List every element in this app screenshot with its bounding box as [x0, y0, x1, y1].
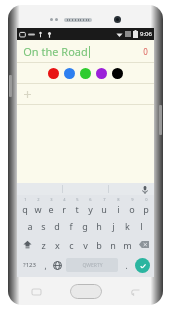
- button[interactable]: 0: [139, 195, 153, 216]
- staticText: r: [62, 203, 66, 215]
- staticText: k: [125, 220, 130, 232]
- button[interactable]: Green: [80, 68, 91, 79]
- button[interactable]: Backspace: [134, 235, 153, 254]
- button[interactable]: Done: [135, 258, 150, 273]
- button[interactable]: Black: [112, 68, 123, 79]
- staticText: 2: [37, 197, 40, 202]
- staticText: t: [75, 203, 79, 215]
- button[interactable]: 2: [31, 195, 44, 216]
- staticText: o: [129, 203, 135, 215]
- staticText: b: [96, 239, 102, 251]
- button[interactable]: h: [92, 216, 106, 235]
- staticText: n: [110, 239, 116, 251]
- button[interactable]: Home: [70, 284, 102, 299]
- button[interactable]: 9: [125, 195, 139, 216]
- staticText: 3: [50, 197, 53, 202]
- button[interactable]: Blue: [64, 68, 75, 79]
- staticText: m: [123, 239, 132, 251]
- staticText: f: [69, 220, 73, 232]
- staticText: y: [88, 203, 93, 215]
- staticText: j: [112, 220, 115, 232]
- staticText: 9: [131, 197, 134, 202]
- staticText: g: [82, 220, 88, 232]
- staticText: u: [101, 203, 107, 215]
- button[interactable]: 5: [70, 195, 83, 216]
- button[interactable]: a: [23, 216, 36, 235]
- staticText: 0: [143, 46, 148, 57]
- button[interactable]: n: [106, 235, 120, 254]
- staticText: a: [27, 220, 33, 232]
- staticText: 9:06: [140, 30, 152, 38]
- staticText: l: [140, 220, 143, 232]
- button[interactable]: d: [50, 216, 64, 235]
- button[interactable]: 3: [44, 195, 57, 216]
- button[interactable]: l: [134, 216, 148, 235]
- button[interactable]: j: [106, 216, 120, 235]
- staticText: z: [41, 239, 46, 251]
- staticText: ?123: [23, 261, 36, 269]
- button[interactable]: 6: [83, 195, 97, 216]
- button[interactable]: .: [120, 254, 132, 276]
- staticText: s: [41, 220, 46, 232]
- staticText: c: [69, 239, 74, 251]
- staticText: e: [48, 203, 54, 215]
- button[interactable]: Recent apps: [30, 286, 42, 298]
- staticText: d: [54, 220, 60, 232]
- button[interactable]: 7: [97, 195, 111, 216]
- button[interactable]: Shift: [18, 235, 36, 254]
- staticText: .: [125, 260, 128, 271]
- button[interactable]: 8: [111, 195, 125, 216]
- staticText: On the Road: [23, 44, 88, 59]
- button[interactable]: g: [78, 216, 92, 235]
- button[interactable]: On the Road: [17, 40, 154, 62]
- button[interactable]: v: [78, 235, 92, 254]
- button[interactable]: Back: [129, 286, 141, 298]
- staticText: p: [143, 203, 149, 215]
- staticText: ,: [44, 260, 47, 271]
- staticText: i: [117, 203, 120, 215]
- button[interactable]: 1: [18, 195, 31, 216]
- staticText: 8: [117, 197, 120, 202]
- button[interactable]: m: [120, 235, 134, 254]
- button[interactable]: Purple: [96, 68, 107, 79]
- staticText: QWERTY: [82, 262, 103, 269]
- button[interactable]: ,: [39, 254, 51, 276]
- button[interactable]: 4: [57, 195, 70, 216]
- button[interactable]: QWERTY: [66, 258, 118, 272]
- staticText: w: [34, 203, 42, 215]
- button[interactable]: s: [36, 216, 50, 235]
- button[interactable]: k: [120, 216, 134, 235]
- button[interactable]: Red: [48, 68, 59, 79]
- staticText: 1: [24, 197, 27, 202]
- button[interactable]: x: [50, 235, 64, 254]
- staticText: h: [96, 220, 102, 232]
- button[interactable]: f: [64, 216, 78, 235]
- staticText: 7: [103, 197, 106, 202]
- button[interactable]: Voice input: [140, 185, 149, 194]
- staticText: 4: [63, 197, 66, 202]
- button[interactable]: ?123: [19, 254, 39, 276]
- staticText: 0: [145, 197, 148, 202]
- button[interactable]: Change language: [51, 254, 64, 276]
- button[interactable]: z: [36, 235, 50, 254]
- staticText: 6: [89, 197, 92, 202]
- staticText: v: [83, 239, 88, 251]
- staticText: q: [22, 203, 28, 215]
- button[interactable]: b: [92, 235, 106, 254]
- button[interactable]: c: [64, 235, 78, 254]
- staticText: x: [55, 239, 60, 251]
- staticText: 5: [76, 197, 79, 202]
